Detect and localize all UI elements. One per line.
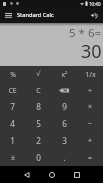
staticText: 6 — [62, 118, 67, 129]
staticText: x² — [61, 70, 68, 79]
staticText: 9 — [62, 101, 67, 112]
other: Backspace — [59, 88, 69, 93]
button[interactable]: 8 — [25, 98, 51, 115]
button[interactable]: Home — [43, 166, 60, 183]
button[interactable]: 2 — [25, 132, 51, 149]
button[interactable]: x² — [51, 66, 77, 82]
button[interactable]: 7 — [0, 98, 25, 115]
button[interactable]: 6 — [51, 115, 77, 132]
staticText: − — [88, 119, 92, 128]
staticText: 5 — [36, 118, 41, 129]
staticText: 1/x — [85, 70, 96, 79]
button[interactable]: × — [77, 98, 103, 115]
button[interactable]: − — [77, 115, 103, 132]
button[interactable]: Backspace — [51, 82, 77, 98]
staticText: ÷ — [88, 86, 92, 95]
staticText: 30 — [81, 39, 102, 64]
button[interactable]: . — [51, 149, 77, 166]
staticText: 1 — [10, 135, 15, 146]
button[interactable]: 3 — [51, 132, 77, 149]
staticText: 4 — [10, 118, 15, 129]
button[interactable]: 1 — [0, 132, 25, 149]
staticText: × — [88, 102, 92, 111]
staticText: 8 — [36, 101, 41, 112]
button[interactable]: ÷ — [77, 82, 103, 98]
button[interactable]: Recents — [68, 166, 85, 183]
button[interactable]: 4 — [0, 115, 25, 132]
button[interactable]: 5 — [25, 115, 51, 132]
staticText: 3 — [62, 135, 67, 146]
button[interactable]: 1/x — [77, 66, 103, 82]
staticText: CE — [8, 86, 17, 95]
button[interactable]: + — [77, 132, 103, 149]
staticText: √ — [36, 70, 41, 78]
staticText: C — [36, 86, 41, 95]
button[interactable]: C — [25, 82, 51, 98]
button[interactable]: = — [77, 149, 103, 166]
button[interactable]: History — [86, 7, 102, 23]
staticText: 10:40 — [89, 1, 101, 7]
button[interactable]: 0 — [25, 149, 51, 166]
staticText: 5 * 6= — [69, 25, 102, 41]
staticText: Standard Calc — [17, 11, 54, 19]
button[interactable]: 9 — [51, 98, 77, 115]
button[interactable]: % — [0, 66, 25, 82]
button[interactable]: Menu — [1, 8, 15, 22]
staticText: ± — [11, 153, 15, 162]
button[interactable]: Back — [18, 166, 35, 183]
staticText: + — [88, 136, 92, 145]
staticText: = — [88, 153, 92, 162]
staticText: 0 — [36, 152, 41, 163]
button[interactable]: √ — [25, 66, 51, 82]
staticText: 2 — [36, 135, 41, 146]
button[interactable]: CE — [0, 82, 25, 98]
staticText: 7 — [10, 101, 15, 112]
staticText: . — [63, 152, 66, 163]
button[interactable]: ± — [0, 149, 25, 166]
staticText: % — [10, 70, 16, 79]
